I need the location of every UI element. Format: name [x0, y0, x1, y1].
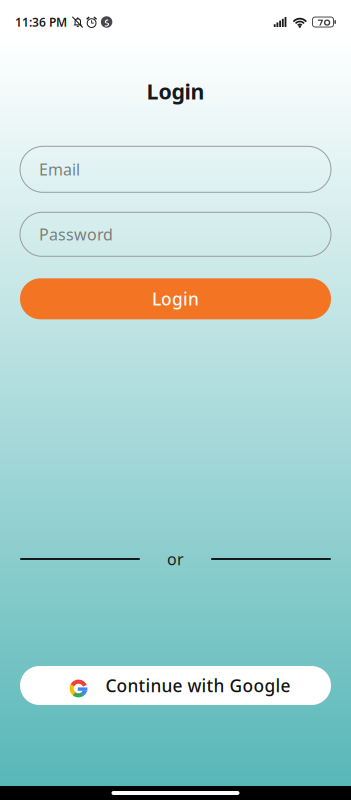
staticText: Continue with Google [105, 674, 290, 697]
button[interactable]: Login [20, 278, 331, 319]
staticText: Login [146, 77, 204, 105]
staticText: or [167, 548, 184, 570]
staticText: Password [39, 224, 113, 245]
button[interactable]: Continue with Google [20, 666, 331, 705]
staticText: Login [152, 287, 199, 310]
button[interactable]: Email [20, 146, 331, 192]
staticText: Email [39, 159, 80, 180]
staticText: 11:36 PM [15, 14, 67, 30]
button[interactable]: Password [20, 212, 331, 256]
